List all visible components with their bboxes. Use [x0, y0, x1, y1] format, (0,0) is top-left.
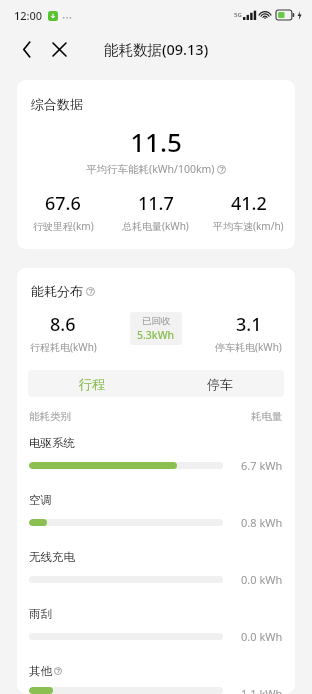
- staticText: 综合数据: [31, 96, 83, 112]
- staticText: 平均车速(km/h): [213, 219, 284, 233]
- staticText: 能耗类别: [29, 410, 71, 423]
- staticText: 行程耗电(kWh): [30, 340, 97, 354]
- staticText: 67.6: [45, 191, 81, 216]
- staticText: 3.1: [236, 312, 262, 337]
- staticText: 空调: [29, 493, 52, 507]
- staticText: 能耗分布: [31, 283, 83, 299]
- staticText: 其他: [29, 664, 52, 678]
- staticText: 行程: [79, 376, 105, 392]
- staticText: 已回收: [142, 315, 171, 327]
- button[interactable]: 停车: [156, 370, 284, 397]
- staticText: 停车: [207, 376, 233, 392]
- staticText: 8.6: [50, 312, 76, 337]
- staticText: 雨刮: [29, 607, 52, 621]
- staticText: 0.0 kWh: [241, 572, 283, 587]
- staticText: 电驱系统: [29, 436, 75, 450]
- button[interactable]: 行程: [28, 370, 156, 397]
- staticText: 5G: [234, 11, 242, 19]
- staticText: 11.7: [138, 191, 174, 216]
- staticText: 5.3kWh: [137, 328, 175, 342]
- staticText: 6.7 kWh: [241, 458, 283, 473]
- staticText: 无线充电: [29, 550, 75, 564]
- staticText: 0.0 kWh: [241, 629, 283, 644]
- staticText: 1.1 kWh: [241, 686, 283, 694]
- button[interactable]: Back: [12, 34, 42, 64]
- staticText: 能耗数据(09.13): [104, 39, 209, 59]
- staticText: 行驶里程(km): [33, 219, 94, 233]
- staticText: 平均行车能耗(kWh/100km): [86, 162, 215, 176]
- button[interactable]: Close: [44, 34, 74, 64]
- staticText: 停车耗电(kWh): [215, 340, 282, 354]
- staticText: 0.8 kWh: [241, 515, 283, 530]
- staticText: 12:00: [14, 8, 43, 23]
- staticText: 总耗电量(kWh): [122, 219, 189, 233]
- staticText: 41.2: [231, 191, 267, 216]
- staticText: 耗电量: [251, 410, 283, 423]
- staticText: 11.5: [17, 124, 295, 159]
